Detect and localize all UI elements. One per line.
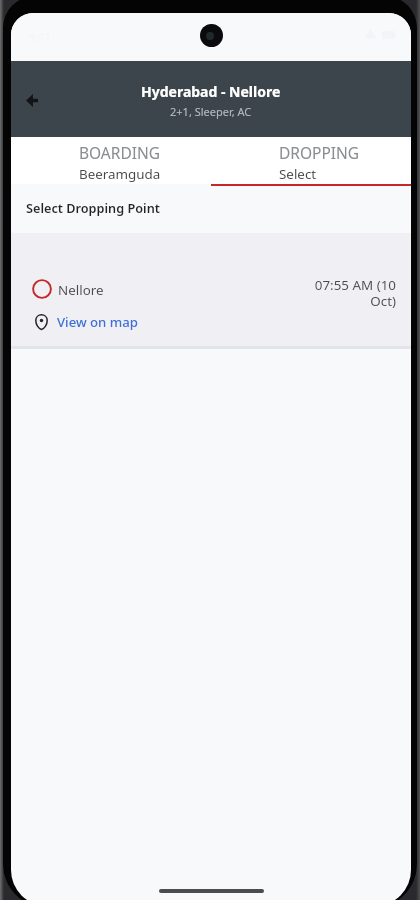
staticText: 07:55 AM (10 Oct) [306,276,396,310]
staticText: 2+1, Sleeper, AC [170,104,252,119]
staticText: View on map [57,313,139,331]
button[interactable]: View on map [35,313,139,331]
staticText: Select [279,165,317,183]
staticText: DROPPING [279,142,360,163]
staticText: Beeramguda [79,165,161,183]
button[interactable]: Nellore [11,233,411,349]
staticText: Select Dropping Point [26,199,160,216]
staticText: Hyderabad - Nellore [141,82,281,101]
button[interactable]: DROPPING [211,137,411,184]
staticText: Nellore [58,281,104,299]
staticText: BOARDING [79,142,161,163]
button[interactable]: Back [11,79,53,121]
button[interactable]: BOARDING [11,137,211,184]
